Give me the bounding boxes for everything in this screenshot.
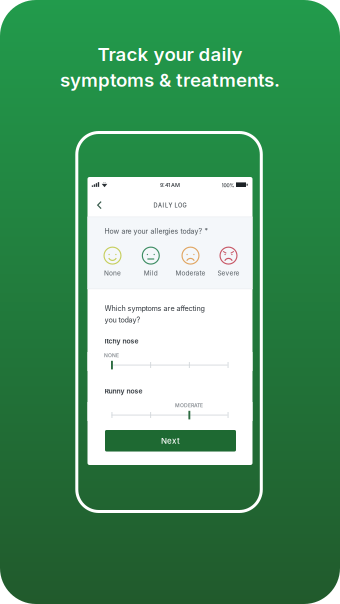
staticText: symptoms & treatments.	[60, 69, 280, 91]
staticText: Moderate	[175, 269, 205, 277]
button[interactable]: Moderate	[170, 246, 210, 278]
staticText: 9:41 AM	[160, 182, 180, 188]
staticText: Runny nose	[104, 387, 142, 395]
staticText: Severe	[217, 269, 239, 277]
button[interactable]: Next	[105, 430, 236, 451]
staticText: Next	[161, 436, 180, 446]
button[interactable]: None	[92, 246, 132, 278]
staticText: MODERATE	[175, 402, 203, 408]
staticText: Which symptoms are affecting	[104, 304, 204, 313]
button[interactable]: Back	[91, 195, 108, 215]
staticText: NONE	[104, 352, 119, 358]
staticText: Itchy nose	[104, 337, 138, 345]
button[interactable]: NONE severity slider	[87, 352, 252, 371]
staticText: Mild	[144, 269, 158, 277]
button[interactable]: MODERATE severity slider	[87, 402, 252, 421]
button[interactable]: Mild	[131, 246, 171, 278]
staticText: 100%	[221, 182, 234, 188]
button[interactable]: Severe	[208, 246, 248, 278]
staticText: DAILY LOG	[153, 202, 187, 209]
staticText: you today?	[104, 315, 140, 324]
staticText: How are your allergies today? *	[104, 227, 207, 235]
staticText: Track your daily	[97, 43, 242, 66]
staticText: None	[104, 269, 121, 277]
